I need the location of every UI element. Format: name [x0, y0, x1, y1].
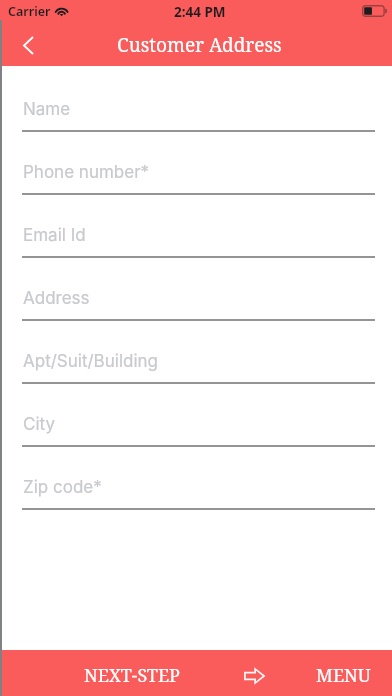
staticText: NEXT-STEP: [84, 663, 180, 688]
button[interactable]: Next step: [228, 650, 278, 696]
staticText: Email Id: [23, 225, 86, 246]
staticText: Address: [23, 288, 90, 309]
button[interactable]: Back: [0, 20, 56, 66]
button[interactable]: Name: [0, 83, 392, 131]
button[interactable]: Address: [0, 272, 392, 320]
button[interactable]: Zip code*: [0, 461, 392, 509]
button[interactable]: Apt/Suit/Building: [0, 335, 392, 383]
button[interactable]: Email Id: [0, 209, 392, 257]
button[interactable]: MENU: [282, 650, 392, 696]
button[interactable]: Phone number*: [0, 146, 392, 194]
staticText: Carrier: [8, 3, 51, 20]
staticText: Apt/Suit/Building: [23, 351, 158, 372]
button[interactable]: City: [0, 398, 392, 446]
button[interactable]: NEXT-STEP: [0, 650, 227, 696]
staticText: MENU: [316, 663, 371, 688]
staticText: City: [23, 414, 55, 435]
staticText: Customer Address: [117, 32, 282, 58]
staticText: Name: [23, 99, 71, 120]
staticText: Phone number*: [23, 162, 150, 183]
staticText: Zip code*: [23, 477, 102, 498]
staticText: 2:44 PM: [174, 3, 226, 21]
